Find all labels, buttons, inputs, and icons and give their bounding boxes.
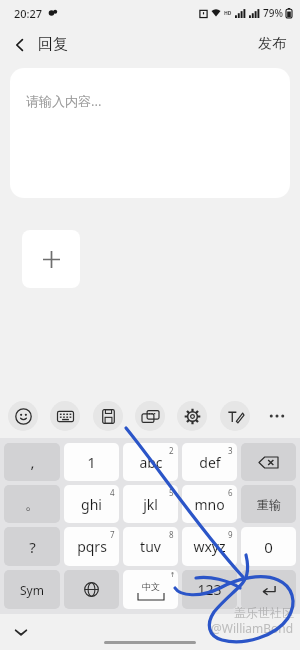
staticText: 7 [110, 529, 115, 540]
button[interactable]: 请输入内容... [10, 68, 290, 198]
button[interactable]: 。 [4, 485, 60, 523]
staticText: 5 [169, 487, 174, 498]
button[interactable]: globe [64, 570, 119, 609]
staticText: Sym [20, 582, 44, 598]
staticText: 20:27 [14, 6, 43, 21]
button[interactable]: pqrs [64, 527, 119, 566]
button[interactable]: Handwriting [220, 401, 250, 431]
staticText: @WilliamBond [211, 620, 294, 636]
staticText: 中文 [142, 581, 160, 592]
button[interactable]: Keyboard [50, 401, 80, 431]
button[interactable]: More [262, 401, 292, 431]
button[interactable]: 0 [241, 527, 296, 566]
staticText: 9 [228, 529, 233, 540]
staticText: 79% [263, 6, 283, 20]
staticText: , [30, 452, 35, 472]
staticText: 重输 [257, 497, 281, 512]
staticText: ? [29, 537, 36, 557]
button[interactable]: 123 [182, 570, 237, 609]
staticText: 0 [264, 537, 273, 557]
button[interactable]: wxyz [182, 527, 237, 566]
button[interactable]: del [241, 443, 296, 481]
staticText: mno [194, 495, 225, 514]
staticText: 3 [228, 445, 233, 456]
staticText: 6 [228, 487, 233, 498]
staticText: tuv [140, 537, 161, 556]
button[interactable]: abc [123, 443, 178, 481]
button[interactable]: , [4, 443, 60, 481]
button[interactable]: Back [0, 29, 80, 60]
staticText: 8 [169, 529, 174, 540]
staticText: pqrs [77, 537, 107, 556]
button[interactable]: tuv [123, 527, 178, 566]
staticText: 4 [110, 487, 115, 498]
staticText: abc [139, 453, 163, 472]
staticText: def [199, 453, 221, 472]
button[interactable]: ghi [64, 485, 119, 523]
staticText: 回复 [38, 35, 68, 54]
other: Back [12, 37, 28, 53]
staticText: 123 [197, 580, 222, 599]
staticText: ghi [81, 495, 102, 514]
button[interactable]: Clipboard [93, 401, 123, 431]
staticText: jkl [143, 495, 158, 514]
button[interactable]: mno [182, 485, 237, 523]
button[interactable]: Settings [177, 401, 207, 431]
button[interactable]: 中文 [123, 570, 178, 609]
button[interactable]: 1 [64, 443, 119, 481]
button[interactable]: def [182, 443, 237, 481]
button[interactable]: 重输 [241, 485, 296, 523]
button[interactable]: 发布 [244, 28, 300, 60]
button[interactable]: enter [241, 570, 296, 609]
staticText: 2 [169, 445, 174, 456]
staticText: 发布 [258, 35, 286, 53]
button[interactable]: Hide keyboard [8, 619, 34, 645]
button[interactable]: Emoji [8, 401, 38, 431]
staticText: 请输入内容... [26, 92, 102, 110]
staticText: wxyz [193, 537, 226, 556]
staticText: 盖乐世社区 [234, 605, 294, 620]
staticText: 1 [87, 452, 96, 472]
button[interactable]: jkl [123, 485, 178, 523]
staticText: HD [224, 10, 232, 17]
button[interactable]: ? [4, 527, 60, 566]
button[interactable]: Translate [135, 401, 165, 431]
button[interactable]: Sym [4, 570, 60, 609]
staticText: 。 [25, 495, 40, 514]
button[interactable]: Add image [22, 230, 80, 288]
